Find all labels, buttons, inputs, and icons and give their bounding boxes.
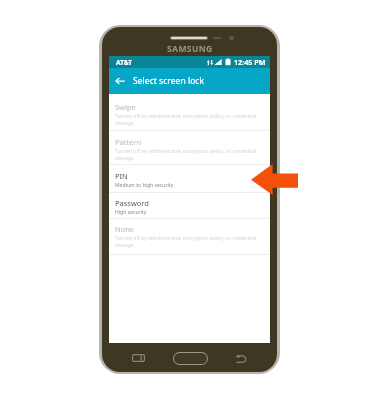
staticText: Select screen lock <box>133 75 205 87</box>
staticText: PIN <box>115 171 128 181</box>
staticText: Swipe <box>115 102 136 112</box>
staticText: Pattern <box>115 137 142 147</box>
staticText: Turned off by administrator, encryption … <box>115 235 257 249</box>
staticText: High security <box>115 209 147 216</box>
staticText: Turned off by administrator, encryption … <box>115 113 257 127</box>
button[interactable]: None <box>109 219 270 255</box>
staticText: None <box>115 224 135 234</box>
button[interactable]: Swipe <box>109 96 270 131</box>
staticText: 12:45 PM <box>234 57 266 67</box>
staticText: Medium to high security <box>115 182 174 189</box>
button[interactable]: Navigate up <box>109 68 131 94</box>
other: Pointer arrow highlighting PIN <box>251 164 298 195</box>
button[interactable]: Password <box>109 193 270 219</box>
button[interactable]: Recent apps <box>132 354 145 362</box>
button[interactable]: Pattern <box>109 131 270 165</box>
button[interactable]: Home <box>174 353 207 364</box>
button[interactable]: Back <box>235 355 247 363</box>
button[interactable]: PIN <box>109 165 270 193</box>
staticText: AT&T <box>116 58 133 67</box>
staticText: SAMSUNG <box>167 43 213 55</box>
staticText: Turned off by administrator, encryption … <box>115 148 257 162</box>
staticText: Password <box>115 198 149 208</box>
